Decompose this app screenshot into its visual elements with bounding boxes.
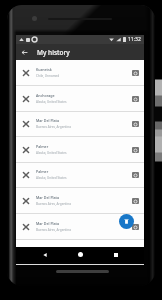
button[interactable]: Remove bbox=[16, 86, 36, 112]
staticText: Palmer bbox=[36, 144, 49, 149]
button[interactable]: Back bbox=[16, 44, 32, 60]
button[interactable]: Recents bbox=[108, 247, 123, 262]
staticText: Buenos Aires, Argentina bbox=[36, 125, 71, 129]
button[interactable]: Details bbox=[126, 111, 144, 137]
staticText: Alaska, United States bbox=[36, 100, 67, 104]
staticText: Alaska, United States bbox=[36, 151, 67, 155]
staticText: Mar Del Plata bbox=[36, 246, 60, 251]
button[interactable]: Remove bbox=[16, 60, 36, 86]
button[interactable]: Remove bbox=[16, 162, 144, 188]
staticText: My history bbox=[37, 48, 70, 57]
button[interactable]: Home bbox=[73, 247, 88, 262]
staticText: Chile, Unnamed bbox=[36, 74, 60, 78]
button[interactable]: Details bbox=[126, 188, 144, 214]
staticText: Mar Del Plata bbox=[36, 118, 60, 123]
button[interactable]: Back bbox=[37, 247, 52, 262]
staticText: Kuznetsk bbox=[36, 67, 52, 72]
staticText: Buenos Aires, Argentina bbox=[36, 202, 71, 206]
button[interactable]: Remove bbox=[16, 214, 144, 240]
staticText: Anchorage bbox=[36, 93, 55, 98]
button[interactable]: Remove bbox=[16, 111, 144, 137]
button[interactable]: Remove bbox=[16, 162, 36, 188]
button[interactable]: Details bbox=[126, 239, 144, 265]
staticText: Palmer bbox=[36, 169, 49, 174]
button[interactable]: Details bbox=[126, 162, 144, 188]
button[interactable]: Remove bbox=[16, 137, 144, 163]
button[interactable]: Remove bbox=[16, 111, 36, 137]
button[interactable]: Details bbox=[126, 86, 144, 112]
button[interactable]: Remove bbox=[16, 60, 144, 86]
button[interactable]: Remove bbox=[16, 188, 144, 214]
staticText: 11:32 bbox=[128, 36, 141, 43]
button[interactable]: Details bbox=[126, 60, 144, 86]
button[interactable]: Details bbox=[126, 137, 144, 163]
button[interactable]: Details bbox=[126, 214, 144, 240]
staticText: Buenos Aires, Argentina bbox=[36, 253, 71, 257]
staticText: Mar Del Plata bbox=[36, 221, 60, 226]
staticText: Buenos Aires, Argentina bbox=[36, 228, 71, 232]
button[interactable]: Remove bbox=[16, 137, 36, 163]
button[interactable]: Remove bbox=[16, 188, 36, 214]
button[interactable]: Remove bbox=[16, 239, 144, 265]
button[interactable]: Remove bbox=[16, 239, 36, 265]
button[interactable]: Remove bbox=[16, 214, 36, 240]
staticText: Alaska, United States bbox=[36, 176, 67, 180]
button[interactable]: Remove bbox=[16, 86, 144, 112]
staticText: Mar Del Plata bbox=[36, 195, 60, 200]
button[interactable]: Delete history bbox=[119, 214, 134, 229]
